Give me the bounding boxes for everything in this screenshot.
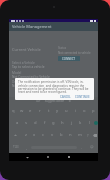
button[interactable]: CANCEL — [59, 95, 72, 99]
button[interactable]: Shift — [9, 129, 21, 141]
button[interactable]: q — [9, 105, 17, 117]
staticText: Not connected to vehicle — [58, 51, 91, 55]
button[interactable]: t — [44, 105, 53, 117]
button[interactable]: b — [57, 129, 66, 141]
button[interactable]: k — [76, 117, 85, 129]
staticText: i — [75, 108, 77, 114]
staticText: q — [12, 108, 15, 114]
staticText: Select a Vehicle — [12, 61, 35, 65]
staticText: u — [65, 108, 68, 114]
staticText: Current Vehicle — [12, 47, 41, 52]
staticText: g — [52, 120, 55, 126]
button[interactable]: o — [80, 105, 89, 117]
staticText: f — [44, 120, 46, 126]
button[interactable]: u — [62, 105, 71, 117]
button[interactable]: n — [66, 129, 75, 141]
button[interactable]: Driver — [12, 80, 101, 88]
staticText: , — [26, 145, 27, 150]
staticText: p — [92, 108, 95, 114]
button[interactable]: v — [48, 129, 57, 141]
staticText: Status — [58, 46, 67, 50]
button[interactable]: f — [40, 117, 49, 129]
staticText: Driver — [12, 80, 22, 84]
button[interactable]: Space — [31, 141, 77, 153]
staticText: k — [79, 120, 82, 126]
staticText: n — [69, 132, 72, 138]
staticText: d — [34, 120, 37, 126]
button[interactable]: h — [58, 117, 67, 129]
staticText: Tap to select a vehicle — [12, 65, 45, 69]
staticText: a — [16, 120, 19, 126]
button[interactable]: g — [49, 117, 58, 129]
staticText: b — [60, 132, 63, 138]
staticText: s — [25, 120, 28, 126]
staticText: Vehicle Management — [12, 24, 52, 29]
staticText: CONTINUE — [75, 95, 90, 99]
button[interactable]: a — [13, 117, 22, 129]
button[interactable]: Vehicle Management — [9, 22, 98, 31]
staticText: The notification permission is off. VIN … — [18, 80, 91, 94]
staticText: Model — [12, 71, 22, 75]
staticText: . — [81, 145, 82, 150]
staticText: Not Connected to Vehicle — [12, 84, 50, 88]
button[interactable]: Symbols — [9, 141, 22, 153]
button[interactable]: y — [53, 105, 62, 117]
staticText: r — [39, 108, 41, 114]
button[interactable]: CONNECT — [58, 56, 80, 61]
staticText: ? — [87, 133, 89, 138]
staticText: GIF Suggest action ⚙ — [36, 99, 72, 103]
button[interactable]: d — [31, 117, 40, 129]
button[interactable]: Model — [12, 71, 101, 79]
staticText: o — [83, 108, 86, 114]
button[interactable]: CONTINUE — [74, 95, 91, 99]
staticText: c — [42, 132, 45, 138]
button[interactable]: p — [89, 105, 98, 117]
button[interactable]: Backspace — [91, 129, 98, 141]
staticText: j — [71, 120, 73, 126]
staticText: y — [56, 108, 59, 114]
button[interactable]: r — [35, 105, 44, 117]
button[interactable]: z — [21, 129, 30, 141]
staticText: ?123 — [13, 145, 19, 149]
staticText: w — [20, 108, 24, 114]
staticText: CANCEL — [60, 95, 71, 99]
button[interactable]: s — [22, 117, 31, 129]
staticText: l — [89, 120, 91, 126]
staticText: t — [48, 108, 50, 114]
button[interactable]: m — [75, 129, 84, 141]
staticText: h — [61, 120, 64, 126]
button[interactable]: Select a Vehicle — [12, 61, 101, 69]
button[interactable]: l — [85, 117, 94, 129]
button[interactable]: c — [39, 129, 48, 141]
button[interactable]: Back — [23, 153, 31, 161]
staticText: CONNECT — [62, 57, 76, 61]
staticText: e — [29, 108, 32, 114]
staticText: z — [25, 132, 27, 138]
staticText: ☺ — [90, 145, 94, 149]
button[interactable]: j — [67, 117, 76, 129]
button[interactable]: Enter — [94, 117, 98, 129]
button[interactable]: x — [30, 129, 39, 141]
button[interactable]: Home — [44, 153, 52, 161]
button[interactable]: e — [26, 105, 35, 117]
staticText: m — [78, 132, 82, 138]
staticText: v — [51, 132, 54, 138]
button[interactable]: Emoji — [86, 141, 98, 153]
staticText: x — [33, 132, 36, 138]
button[interactable]: w — [17, 105, 26, 117]
staticText: Not Connected to Vehicle — [12, 75, 50, 79]
button[interactable]: Recents — [65, 153, 73, 161]
